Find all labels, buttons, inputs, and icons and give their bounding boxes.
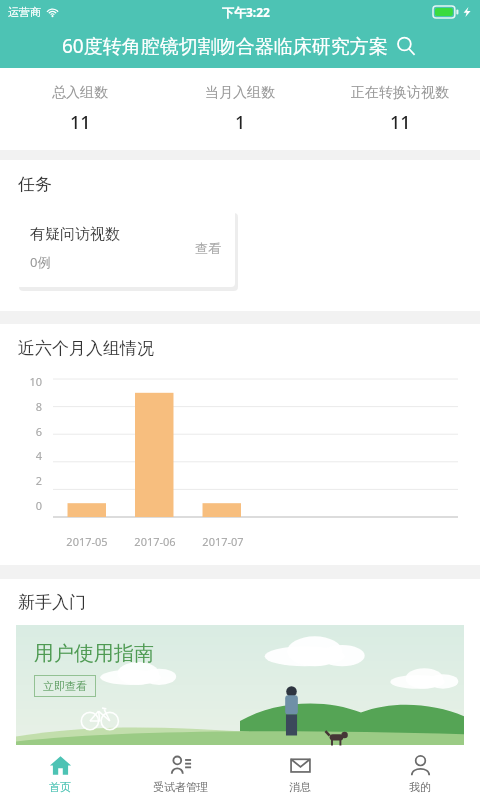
button[interactable]: 消息: [240, 747, 360, 800]
button[interactable]: 当月入组数: [160, 68, 320, 150]
staticText: 8: [22, 399, 42, 414]
staticText: 2017-07: [189, 534, 257, 549]
staticText: 首页: [49, 780, 71, 794]
staticText: 查看: [195, 240, 221, 256]
staticText: 有疑问访视数: [30, 225, 120, 244]
staticText: 当月入组数: [205, 84, 275, 102]
staticText: 下午3:22: [222, 4, 270, 20]
staticText: 运营商: [8, 5, 41, 19]
staticText: 11: [70, 110, 91, 135]
staticText: 2: [22, 473, 42, 488]
button[interactable]: 受试者管理: [120, 747, 240, 800]
staticText: 4: [22, 448, 42, 463]
staticText: 6: [22, 424, 42, 439]
button[interactable]: 首页: [0, 747, 120, 800]
button[interactable]: 用户使用指南: [16, 625, 464, 745]
staticText: 我的: [409, 780, 431, 794]
button[interactable]: Search: [393, 33, 419, 59]
staticText: 消息: [289, 780, 311, 794]
staticText: 0: [22, 498, 42, 513]
staticText: 受试者管理: [153, 780, 208, 794]
staticText: 10: [22, 374, 42, 389]
staticText: 正在转换访视数: [351, 84, 449, 102]
staticText: 2017-05: [53, 534, 121, 549]
staticText: 11: [390, 110, 411, 135]
staticText: 总入组数: [52, 84, 108, 102]
button[interactable]: 我的: [360, 747, 480, 800]
staticText: 立即查看: [43, 679, 87, 693]
button[interactable]: 有疑问访视数: [16, 209, 235, 287]
staticText: 60度转角腔镜切割吻合器临床研究方案: [62, 33, 388, 59]
button[interactable]: 总入组数: [0, 68, 160, 150]
staticText: 用户使用指南: [34, 641, 154, 666]
staticText: 2017-06: [121, 534, 189, 549]
staticText: 近六个月入组情况: [18, 338, 154, 359]
button[interactable]: 正在转换访视数: [320, 68, 480, 150]
staticText: 1: [235, 110, 246, 135]
staticText: 0例: [30, 253, 51, 271]
staticText: 任务: [18, 174, 52, 195]
staticText: 新手入门: [18, 592, 86, 613]
